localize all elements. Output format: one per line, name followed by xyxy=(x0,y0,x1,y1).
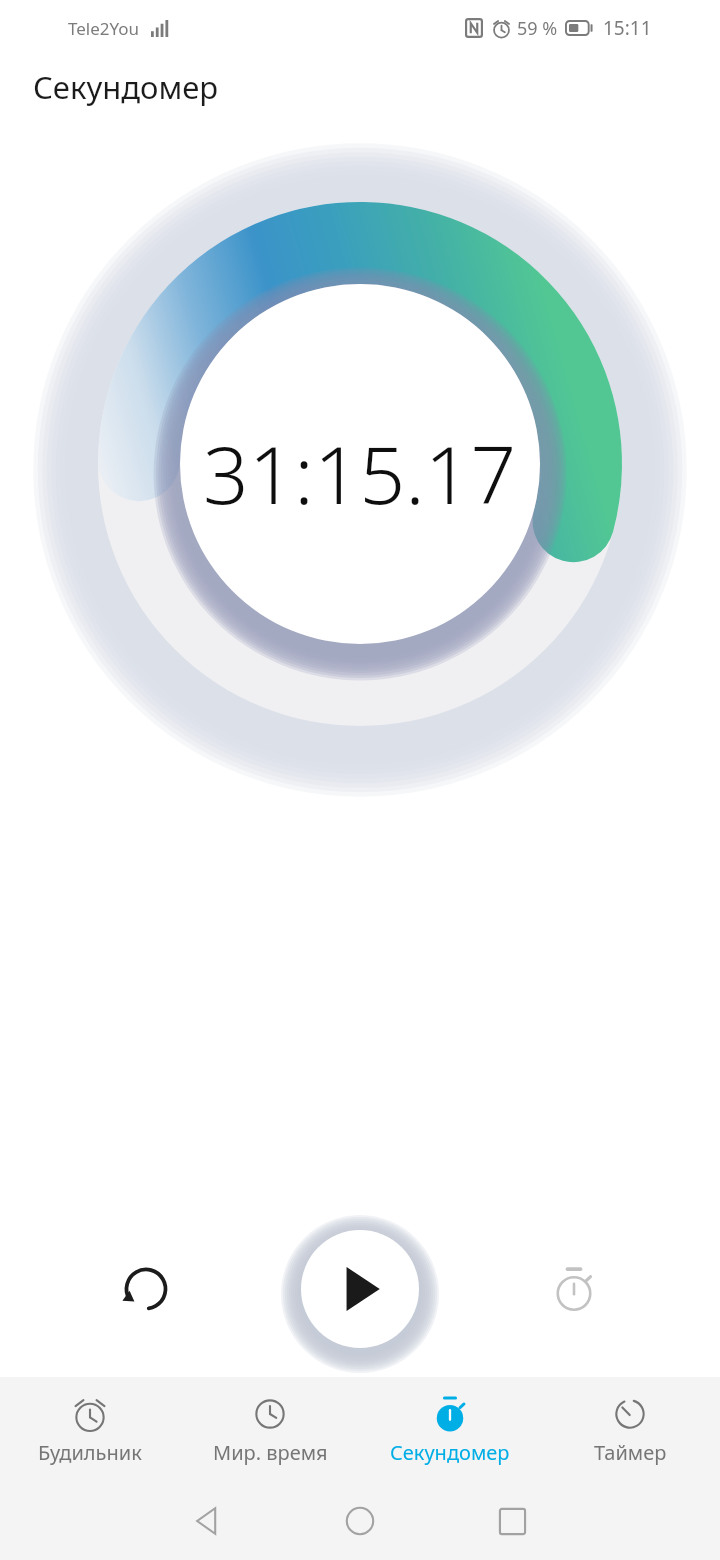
button[interactable]: Будильник xyxy=(0,1377,180,1482)
staticText: Секундомер xyxy=(390,1439,510,1466)
button[interactable]: Назад xyxy=(132,1482,284,1560)
staticText: Будильник xyxy=(38,1439,142,1466)
staticText: Таймер xyxy=(594,1439,667,1466)
button[interactable]: Таймер xyxy=(540,1377,720,1482)
button[interactable]: Круг xyxy=(536,1251,612,1327)
button[interactable]: Сбросить xyxy=(108,1251,184,1327)
staticText: Мир. время xyxy=(213,1439,328,1466)
staticText: 59 % xyxy=(517,16,558,41)
staticText: 15:11 xyxy=(603,15,652,41)
button[interactable]: Главный экран xyxy=(284,1482,436,1560)
button[interactable]: Мир. время xyxy=(180,1377,360,1482)
button[interactable]: Секундомер xyxy=(360,1377,540,1482)
staticText: 31:15.17 xyxy=(203,418,517,527)
staticText: Tele2You xyxy=(68,17,140,40)
button[interactable]: Недавние приложения xyxy=(436,1482,588,1560)
staticText: Секундомер xyxy=(33,66,219,108)
button[interactable]: Старт xyxy=(301,1230,419,1348)
